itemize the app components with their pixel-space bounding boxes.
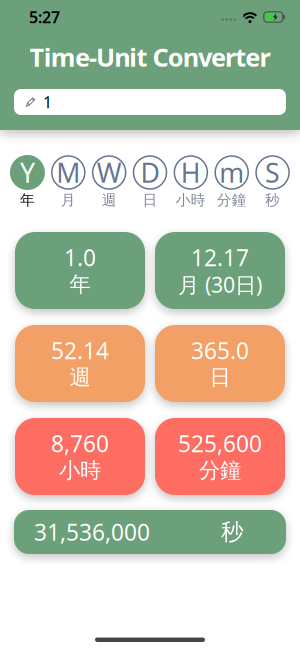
staticText: 月 — [61, 191, 76, 209]
staticText: H — [181, 155, 201, 190]
staticText: 8,760 — [51, 428, 109, 459]
button[interactable]: D — [130, 155, 170, 209]
staticText: 秒 — [221, 518, 244, 546]
staticText: 年 — [69, 271, 90, 298]
staticText: 秒 — [265, 191, 280, 209]
staticText: M — [56, 155, 80, 190]
staticText: Time-Unit Converter — [30, 40, 270, 74]
staticText: 525,600 — [178, 428, 262, 459]
staticText: 1 — [43, 91, 52, 113]
staticText: 小時 — [59, 457, 101, 484]
staticText: 小時 — [176, 191, 206, 209]
staticText: 365.0 — [191, 335, 249, 366]
button[interactable]: W — [89, 155, 130, 209]
staticText: 年 — [20, 191, 35, 209]
staticText: 日 — [142, 191, 157, 209]
button[interactable]: H — [170, 155, 211, 209]
staticText: 分鐘 — [217, 191, 247, 209]
staticText: 5:27 — [29, 6, 60, 28]
button[interactable]: m — [211, 155, 252, 209]
staticText: D — [140, 155, 159, 190]
staticText: W — [97, 155, 122, 190]
staticText: 日 — [209, 364, 230, 391]
button[interactable]: 1 — [14, 89, 286, 115]
button[interactable]: S — [252, 155, 293, 209]
staticText: 1.0 — [64, 242, 96, 273]
staticText: 週 — [102, 191, 117, 209]
staticText: 週 — [69, 364, 90, 391]
staticText: Y — [20, 155, 35, 190]
staticText: 52.14 — [51, 335, 109, 366]
staticText: m — [219, 155, 244, 190]
staticText: 31,536,000 — [34, 517, 150, 547]
staticText: 分鐘 — [199, 457, 241, 484]
button[interactable]: Y — [7, 155, 48, 209]
button[interactable]: M — [48, 155, 89, 209]
staticText: 12.17 — [191, 242, 249, 273]
staticText: S — [265, 155, 280, 190]
staticText: 月 (30日) — [178, 270, 262, 299]
